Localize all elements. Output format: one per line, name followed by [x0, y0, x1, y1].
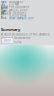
staticText: Type — [1, 0, 7, 3]
staticText: A short description of the attached item… — [1, 33, 50, 40]
staticText: Added — [1, 6, 8, 14]
staticText: Owner — [1, 9, 8, 16]
staticText: Open — [3, 39, 11, 42]
staticText: A. Designer — [9, 11, 26, 14]
button[interactable]: Open — [2, 38, 13, 43]
staticText: Jan 14, 2025 — [9, 8, 28, 12]
staticText: Kind — [1, 5, 8, 9]
staticText: Updated today — [1, 40, 21, 44]
staticText: Summary — [1, 27, 20, 32]
staticText: Document — [9, 0, 23, 3]
staticText: Where — [1, 12, 9, 19]
staticText: iCloud Drive — [9, 14, 27, 17]
staticText: 2.4 MB — [9, 3, 19, 6]
staticText: share.example.com — [9, 16, 33, 20]
staticText: PDF Document — [9, 5, 29, 9]
staticText: Link — [1, 16, 6, 20]
staticText: Size — [1, 3, 6, 6]
